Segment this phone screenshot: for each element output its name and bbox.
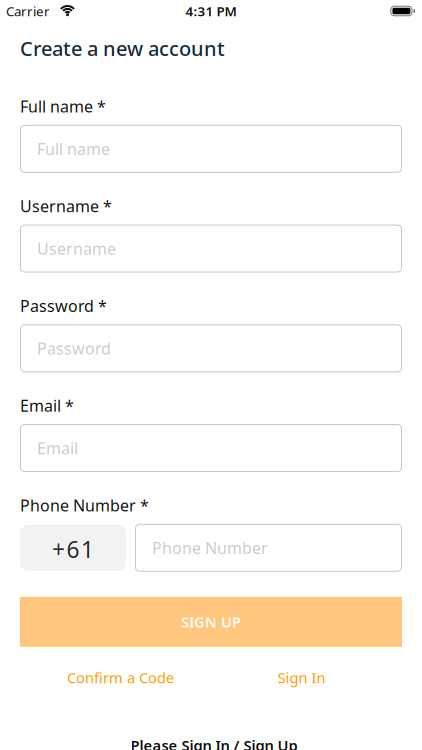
staticText: Username * [20,195,112,216]
button[interactable]: Email [20,424,402,472]
staticText: Username [37,238,116,259]
staticText: Email [37,437,78,459]
button[interactable]: Confirm a Code [30,668,211,687]
staticText: Create a new account [20,35,225,62]
staticText: Full name * [20,96,106,117]
button[interactable]: Username [20,225,402,273]
staticText: SIGN UP [181,612,241,632]
staticText: Please Sign In / Sign Up [130,735,297,750]
staticText: Password * [20,295,107,316]
staticText: +61 [52,534,94,564]
staticText: Sign In [277,668,325,687]
button[interactable]: Phone Number [135,524,402,572]
button[interactable]: Country code +61 [20,525,126,571]
button[interactable]: Sign In [211,668,392,687]
staticText: 4:31 PM [185,2,236,20]
staticText: Email * [20,395,74,416]
staticText: Password [37,338,111,359]
button[interactable]: Password [20,324,402,372]
button[interactable]: SIGN UP [20,597,402,647]
button[interactable]: Full name [20,125,402,173]
staticText: Full name [37,138,110,159]
staticText: Phone Number [152,537,268,558]
staticText: Phone Number * [20,495,149,516]
staticText: Confirm a Code [67,668,174,687]
staticText: Carrier [6,2,50,20]
